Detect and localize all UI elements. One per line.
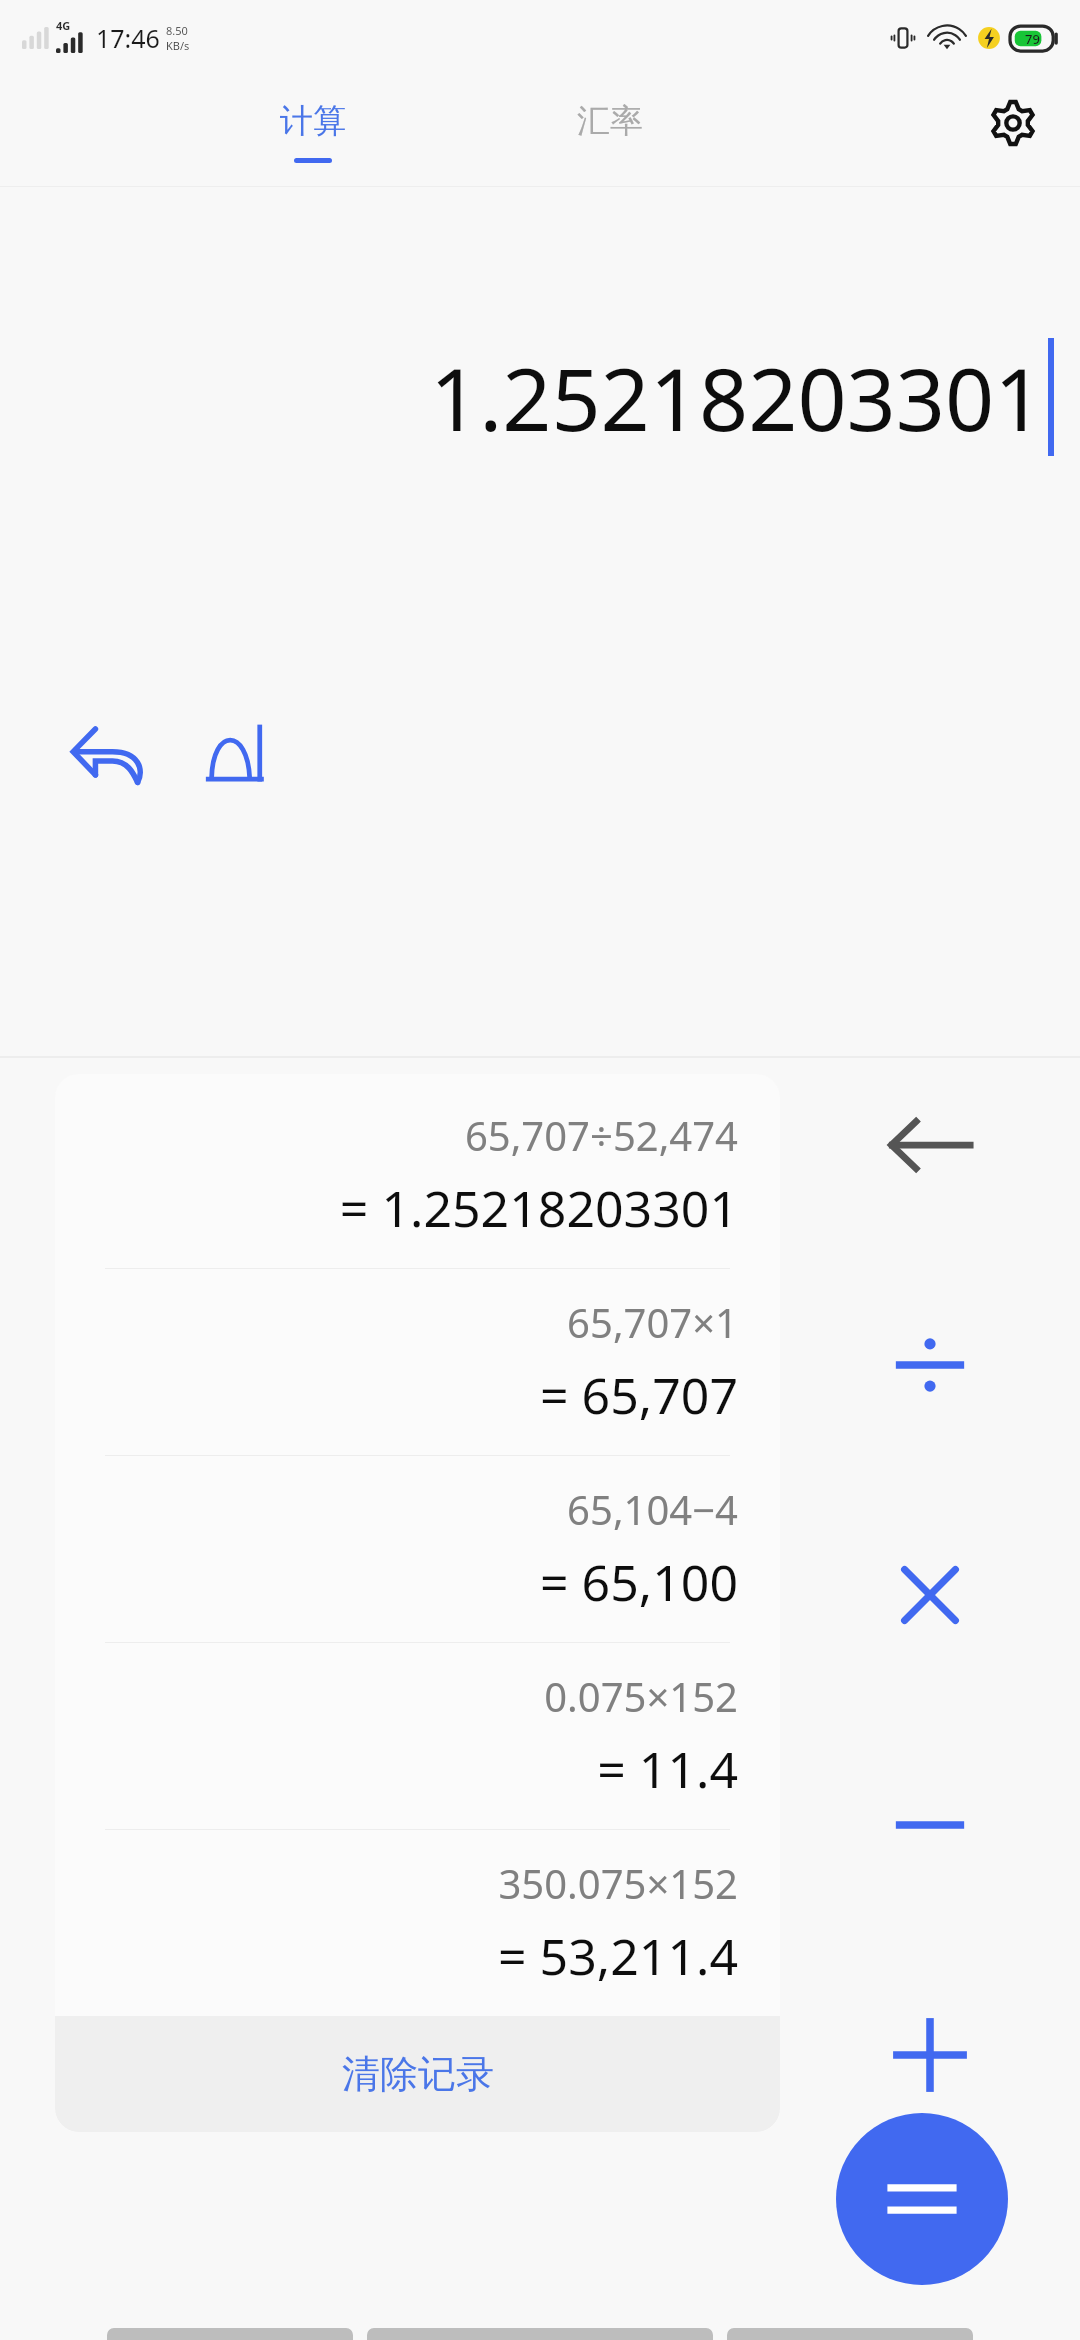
button[interactable]: Back [107, 2328, 353, 2340]
staticText: 65,104−4 [567, 1482, 738, 1536]
button[interactable]: 350.075×152 [55, 1830, 780, 2016]
button[interactable]: 65,707×1 [55, 1269, 780, 1455]
staticText: 计算 [280, 100, 346, 142]
button[interactable]: 汇率 [545, 75, 675, 187]
staticText: 65,707×1 [567, 1295, 738, 1349]
button[interactable]: Settings [974, 84, 1052, 162]
staticText: 17:46 [96, 21, 160, 55]
staticText: 清除记录 [342, 2050, 494, 2098]
staticText: 0.075×152 [544, 1669, 738, 1723]
staticText: 4G [56, 18, 71, 33]
staticText: = 65,100 [540, 1548, 738, 1616]
staticText: 1.25218203301 [430, 339, 1044, 456]
button[interactable]: Home [367, 2328, 713, 2340]
staticText: 65,707÷52,474 [464, 1108, 738, 1162]
button[interactable]: Recents [727, 2328, 973, 2340]
staticText: = 11.4 [597, 1735, 738, 1803]
staticText: = 53,211.4 [498, 1922, 738, 1990]
staticText: = 1.25218203301 [339, 1174, 738, 1242]
button[interactable]: 清除记录 [55, 2016, 780, 2132]
button[interactable]: 计算 [248, 75, 378, 187]
button[interactable]: Undo [62, 708, 154, 800]
button[interactable]: Minus [860, 1755, 1000, 1895]
button[interactable]: 0.075×152 [55, 1643, 780, 1829]
staticText: 8.50 [166, 23, 188, 38]
staticText: 79 [1025, 30, 1040, 48]
button[interactable]: Equals [836, 2113, 1008, 2285]
button[interactable]: Multiply [860, 1525, 1000, 1665]
staticText: 350.075×152 [498, 1856, 738, 1910]
staticText: 汇率 [577, 100, 643, 142]
button[interactable]: Function graph [188, 708, 280, 800]
button[interactable]: Backspace [860, 1075, 1000, 1215]
button[interactable]: 65,707÷52,474 [55, 1074, 780, 1268]
button[interactable]: 65,104−4 [55, 1456, 780, 1642]
button[interactable]: Plus [860, 1985, 1000, 2125]
staticText: = 65,707 [540, 1361, 738, 1429]
staticText: KB/s [166, 38, 190, 53]
button[interactable]: Divide [860, 1295, 1000, 1435]
